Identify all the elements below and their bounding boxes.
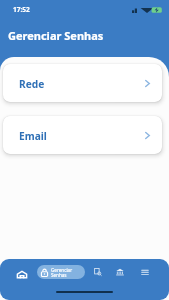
staticText: Gerenciar Senhas (8, 28, 104, 43)
staticText: Email (19, 129, 47, 143)
staticText: Rede (19, 77, 45, 91)
staticText: 17:52 (13, 5, 30, 14)
button[interactable]: Gerenciar Senhas (37, 265, 85, 279)
button[interactable]: Search documents (88, 262, 108, 282)
button[interactable]: Email (3, 116, 162, 154)
button[interactable]: Menu (135, 262, 155, 282)
staticText: Gerenciar Senhas (51, 267, 73, 278)
button[interactable]: Bank (110, 262, 130, 282)
button[interactable]: Rede (3, 64, 162, 102)
button[interactable]: Home (12, 264, 32, 284)
